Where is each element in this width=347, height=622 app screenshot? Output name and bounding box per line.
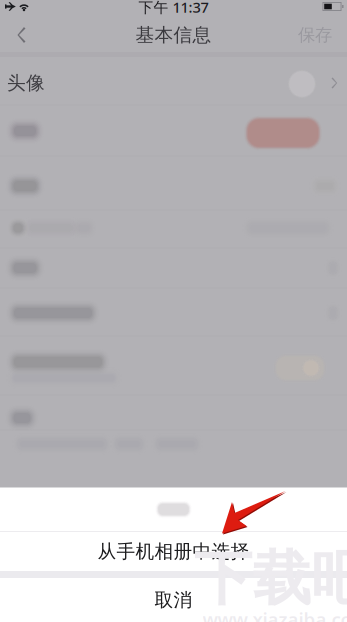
staticText: www.xiazaiba.com [202,607,347,622]
staticText: 保存 [298,24,332,46]
button[interactable]: 取消 [0,578,347,622]
button[interactable]: 拍照 [0,488,347,531]
staticText: 下载吧 [193,543,347,615]
staticText: 基本信息 [135,23,211,46]
button[interactable]: 保存 [289,18,341,51]
staticText: 下午 11:37 [138,0,208,17]
button[interactable]: 从手机相册中选择 [0,532,347,571]
staticText: 头像 [7,71,45,94]
staticText: 取消 [154,588,192,611]
staticText: 从手机相册中选择 [97,540,249,563]
button[interactable]: 返回 [1,19,45,52]
